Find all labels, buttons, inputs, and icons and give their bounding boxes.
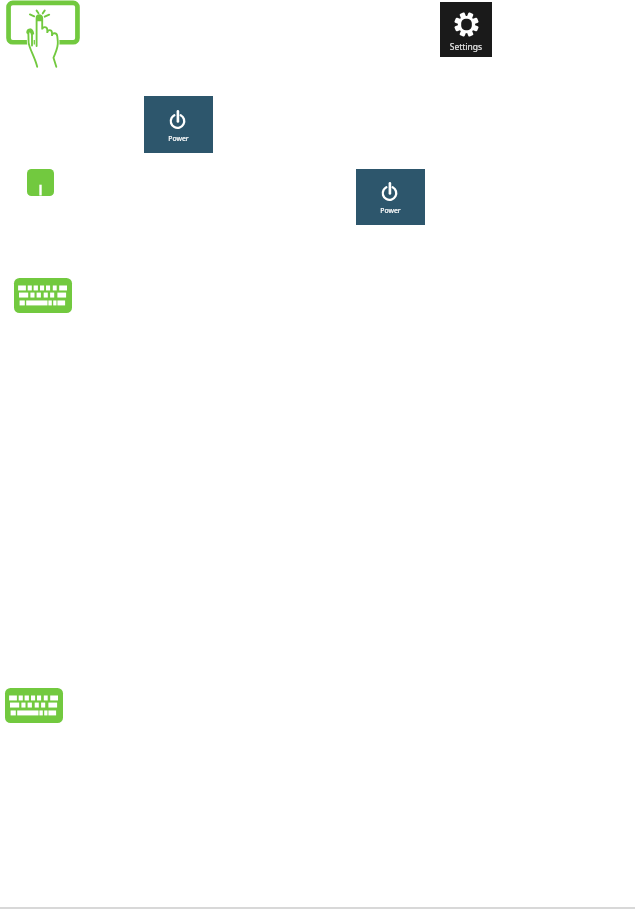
staticText: Power (356, 206, 425, 215)
button[interactable]: Tap touch screen (4, 0, 82, 70)
button[interactable]: Power (356, 169, 425, 225)
button[interactable]: Settings (440, 2, 492, 57)
button[interactable]: Power (144, 96, 213, 153)
button[interactable]: Touchpad (27, 169, 54, 196)
staticText: Settings (440, 41, 492, 53)
button[interactable]: Keyboard (5, 688, 63, 723)
staticText: Power (144, 134, 213, 143)
button[interactable]: Keyboard (14, 278, 72, 313)
